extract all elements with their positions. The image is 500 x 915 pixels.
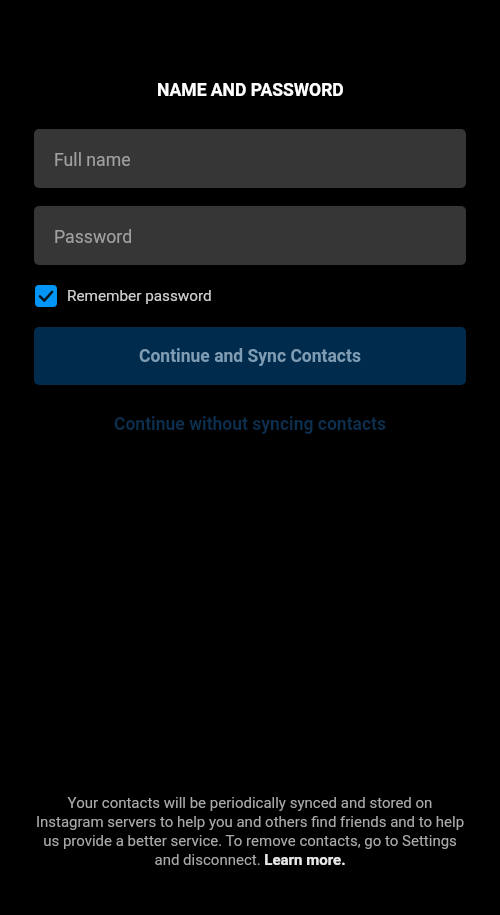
staticText: Continue and Sync Contacts bbox=[139, 346, 361, 367]
button[interactable]: Continue without syncing contacts bbox=[0, 406, 500, 442]
button[interactable]: Continue and Sync Contacts bbox=[34, 327, 466, 385]
button[interactable]: Remember password checkbox, checked bbox=[35, 282, 212, 310]
other: Remember password checkbox, checked bbox=[35, 285, 57, 307]
staticText: NAME AND PASSWORD bbox=[157, 80, 344, 101]
button[interactable]: Password bbox=[34, 206, 466, 265]
button[interactable]: Full name bbox=[34, 129, 466, 188]
staticText: Continue without syncing contacts bbox=[114, 414, 387, 435]
staticText: Your contacts will be periodically synce… bbox=[35, 794, 465, 869]
staticText: Full name bbox=[54, 150, 131, 171]
staticText: Remember password bbox=[67, 287, 212, 305]
staticText: Password bbox=[54, 227, 133, 248]
